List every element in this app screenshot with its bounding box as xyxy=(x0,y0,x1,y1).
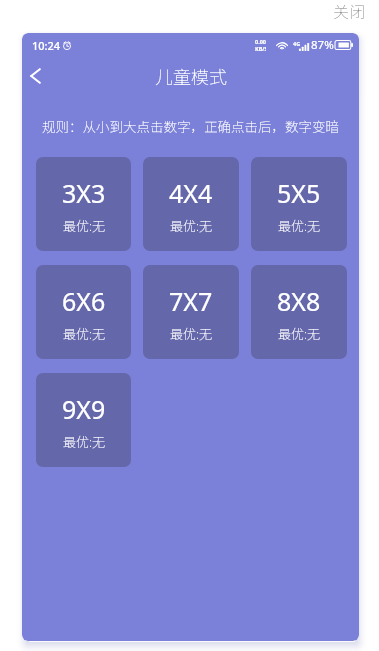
staticText: 6X6 xyxy=(62,284,106,318)
staticText: 0.00 xyxy=(255,38,266,45)
staticText: 10:24 xyxy=(32,38,61,53)
staticText: 最优:无 xyxy=(278,216,321,235)
button[interactable]: 9X9 xyxy=(36,373,131,467)
staticText: KB/S xyxy=(255,45,266,52)
staticText: 87% xyxy=(311,37,334,53)
button[interactable]: Back xyxy=(22,59,48,93)
staticText: 最优:无 xyxy=(170,216,213,235)
staticText: 4G xyxy=(293,40,301,47)
button[interactable]: 3X3 xyxy=(36,157,131,251)
button[interactable]: 8X8 xyxy=(251,265,347,359)
staticText: 规则：从小到大点击数字，正确点击后，数字变暗 xyxy=(42,116,339,136)
staticText: 儿童模式 xyxy=(155,63,227,89)
staticText: 9X9 xyxy=(62,392,106,426)
staticText: 7X7 xyxy=(169,284,213,318)
staticText: 最优:无 xyxy=(278,324,321,343)
button[interactable]: 7X7 xyxy=(143,265,239,359)
button[interactable]: 关闭 xyxy=(330,0,369,27)
button[interactable]: 5X5 xyxy=(251,157,347,251)
button[interactable]: 4X4 xyxy=(143,157,239,251)
staticText: 8X8 xyxy=(277,284,321,318)
staticText: 最优:无 xyxy=(63,216,106,235)
staticText: 5X5 xyxy=(277,176,321,210)
staticText: 3X3 xyxy=(62,176,106,210)
staticText: 4X4 xyxy=(169,176,213,210)
staticText: 最优:无 xyxy=(170,324,213,343)
staticText: 最优:无 xyxy=(63,324,106,343)
staticText: 关闭 xyxy=(333,0,366,22)
button[interactable]: 6X6 xyxy=(36,265,131,359)
staticText: 最优:无 xyxy=(63,432,106,451)
